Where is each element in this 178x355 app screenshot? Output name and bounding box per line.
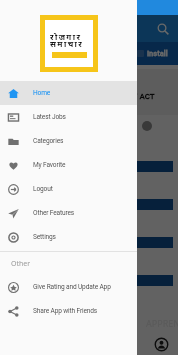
- button[interactable]: [100, 161, 173, 172]
- button[interactable]: My Favorite: [0, 153, 137, 177]
- staticText: Share App with Friends: [33, 307, 98, 315]
- staticText: Home: [33, 89, 51, 97]
- button[interactable]: Categories: [0, 129, 137, 153]
- button[interactable]: Settings: [0, 225, 137, 249]
- button[interactable]: Latest Jobs: [0, 105, 137, 129]
- button[interactable]: [100, 275, 173, 286]
- button[interactable]: Install: [0, 42, 178, 65]
- button[interactable]: Profile: [155, 338, 168, 351]
- staticText: My Favorite: [33, 161, 66, 169]
- button[interactable]: Search: [154, 20, 172, 38]
- staticText: Settings: [33, 233, 56, 241]
- staticText: Categories: [33, 137, 64, 145]
- staticText: GOVERNMENT JOB VACANCY ACT: [29, 92, 155, 101]
- staticText: Other Features: [33, 209, 75, 217]
- button[interactable]: [100, 199, 173, 210]
- staticText: Rozgar Samachar: [30, 23, 106, 35]
- staticText: रोजगार समाचार: [50, 31, 84, 50]
- button[interactable]: Share App with Friends: [0, 299, 137, 323]
- staticText: Give Rating and Update App: [33, 283, 111, 291]
- button[interactable]: Other Features: [0, 201, 137, 225]
- button[interactable]: Home: [0, 81, 137, 105]
- button[interactable]: Give Rating and Update App: [0, 275, 137, 299]
- staticText: Install: [147, 49, 168, 58]
- staticText: Latest Jobs: [33, 113, 66, 121]
- staticText: Other: [11, 259, 31, 269]
- button[interactable]: Logout: [0, 177, 137, 201]
- staticText: Logout: [33, 185, 53, 193]
- button[interactable]: [100, 237, 173, 248]
